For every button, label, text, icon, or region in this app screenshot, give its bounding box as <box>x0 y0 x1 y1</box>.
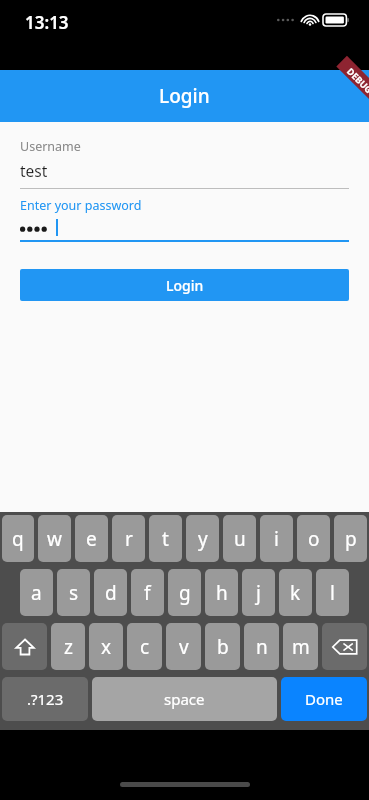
staticText: Username <box>20 138 81 155</box>
button[interactable]: n <box>244 623 279 670</box>
staticText: Enter your password <box>20 197 142 214</box>
staticText: e <box>86 526 97 552</box>
button[interactable]: .?123 <box>2 677 88 721</box>
button[interactable]: b <box>205 623 240 670</box>
staticText: test <box>20 160 48 181</box>
staticText: x <box>101 634 112 660</box>
button[interactable]: Shift <box>2 623 47 670</box>
staticText: d <box>105 580 117 606</box>
staticText: n <box>256 634 268 660</box>
button[interactable]: m <box>283 623 318 670</box>
button[interactable]: j <box>242 569 275 616</box>
staticText: r <box>125 526 133 552</box>
staticText: z <box>64 634 73 660</box>
button[interactable]: e <box>75 515 108 562</box>
staticText: m <box>292 634 310 660</box>
staticText: l <box>330 580 335 606</box>
button[interactable]: p <box>334 515 367 562</box>
button[interactable]: space <box>92 677 277 721</box>
button[interactable]: h <box>205 569 238 616</box>
staticText: h <box>216 580 228 606</box>
staticText: t <box>162 526 169 552</box>
button[interactable]: Username <box>20 138 349 189</box>
staticText: Login <box>166 276 204 295</box>
staticText: k <box>290 580 301 606</box>
staticText: o <box>308 526 320 552</box>
button[interactable]: r <box>112 515 145 562</box>
button[interactable]: q <box>2 515 34 562</box>
staticText: DEBUG <box>345 65 369 95</box>
staticText: c <box>140 634 150 660</box>
staticText: u <box>234 526 246 552</box>
staticText: space <box>164 689 205 709</box>
button[interactable]: l <box>316 569 349 616</box>
staticText: i <box>274 526 279 552</box>
button[interactable]: o <box>297 515 330 562</box>
staticText: 13:13 <box>25 11 69 34</box>
staticText: g <box>179 580 191 606</box>
button[interactable]: Backspace <box>322 623 367 670</box>
staticText: b <box>217 634 229 660</box>
button[interactable]: Done <box>281 677 367 721</box>
button[interactable]: g <box>168 569 201 616</box>
staticText: j <box>256 580 261 606</box>
staticText: Login <box>159 83 210 109</box>
button[interactable]: Login <box>20 269 349 301</box>
button[interactable]: x <box>89 623 123 670</box>
staticText: v <box>179 634 189 660</box>
button[interactable]: Enter your password <box>20 197 349 242</box>
staticText: q <box>12 526 24 552</box>
staticText: a <box>31 580 42 606</box>
button[interactable]: i <box>260 515 293 562</box>
staticText: p <box>345 526 357 552</box>
button[interactable]: y <box>186 515 219 562</box>
staticText: s <box>69 580 79 606</box>
button[interactable]: v <box>166 623 201 670</box>
staticText: w <box>47 526 62 552</box>
button[interactable]: c <box>127 623 162 670</box>
staticText: y <box>198 526 208 552</box>
button[interactable]: z <box>51 623 85 670</box>
staticText: f <box>144 580 151 606</box>
button[interactable]: s <box>57 569 90 616</box>
button[interactable]: k <box>279 569 312 616</box>
staticText: .?123 <box>27 689 64 709</box>
button[interactable]: u <box>223 515 256 562</box>
button[interactable]: d <box>94 569 127 616</box>
button[interactable]: w <box>38 515 71 562</box>
staticText: Done <box>305 689 343 709</box>
button[interactable]: a <box>20 569 53 616</box>
button[interactable]: f <box>131 569 164 616</box>
button[interactable]: t <box>149 515 182 562</box>
